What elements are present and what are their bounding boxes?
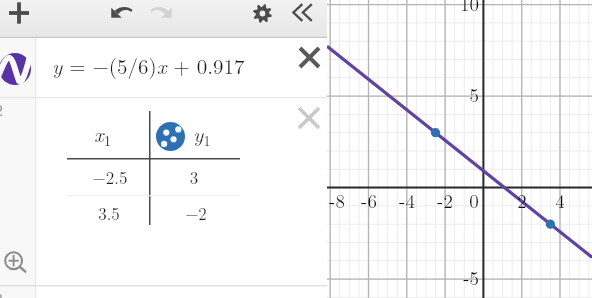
- staticText: 5: [445, 81, 479, 108]
- staticText: −2.5: [70, 165, 150, 189]
- staticText: −2: [156, 201, 236, 225]
- button[interactable]: Undo: [110, 5, 133, 28]
- staticText: 3.5: [69, 201, 149, 225]
- staticText: 0: [457, 187, 491, 214]
- staticText: 4: [543, 187, 577, 214]
- staticText: 2: [0, 98, 4, 121]
- staticText: 3: [154, 165, 234, 189]
- staticText: -8: [320, 187, 354, 214]
- staticText: 3: [0, 287, 4, 298]
- button[interactable]: Collapse panel: [293, 3, 312, 22]
- button[interactable]: Zoom in: [4, 251, 27, 274]
- button[interactable]: Delete table: [299, 108, 319, 128]
- button[interactable]: Delete expression: [300, 48, 319, 67]
- staticText: -4: [390, 187, 424, 214]
- staticText: x1: [94, 118, 112, 150]
- staticText: -5: [445, 264, 479, 291]
- staticText: y = −(5/6)x + 0.917: [52, 50, 245, 80]
- button[interactable]: Add expression: [9, 3, 29, 23]
- staticText: -2: [428, 187, 462, 214]
- button[interactable]: Redo: [150, 5, 173, 28]
- button[interactable]: Settings: [253, 4, 272, 23]
- staticText: y1: [193, 118, 211, 150]
- staticText: 2: [505, 187, 539, 214]
- staticText: 10: [445, 0, 479, 17]
- button[interactable]: Point style: [156, 122, 185, 151]
- staticText: -6: [352, 187, 386, 214]
